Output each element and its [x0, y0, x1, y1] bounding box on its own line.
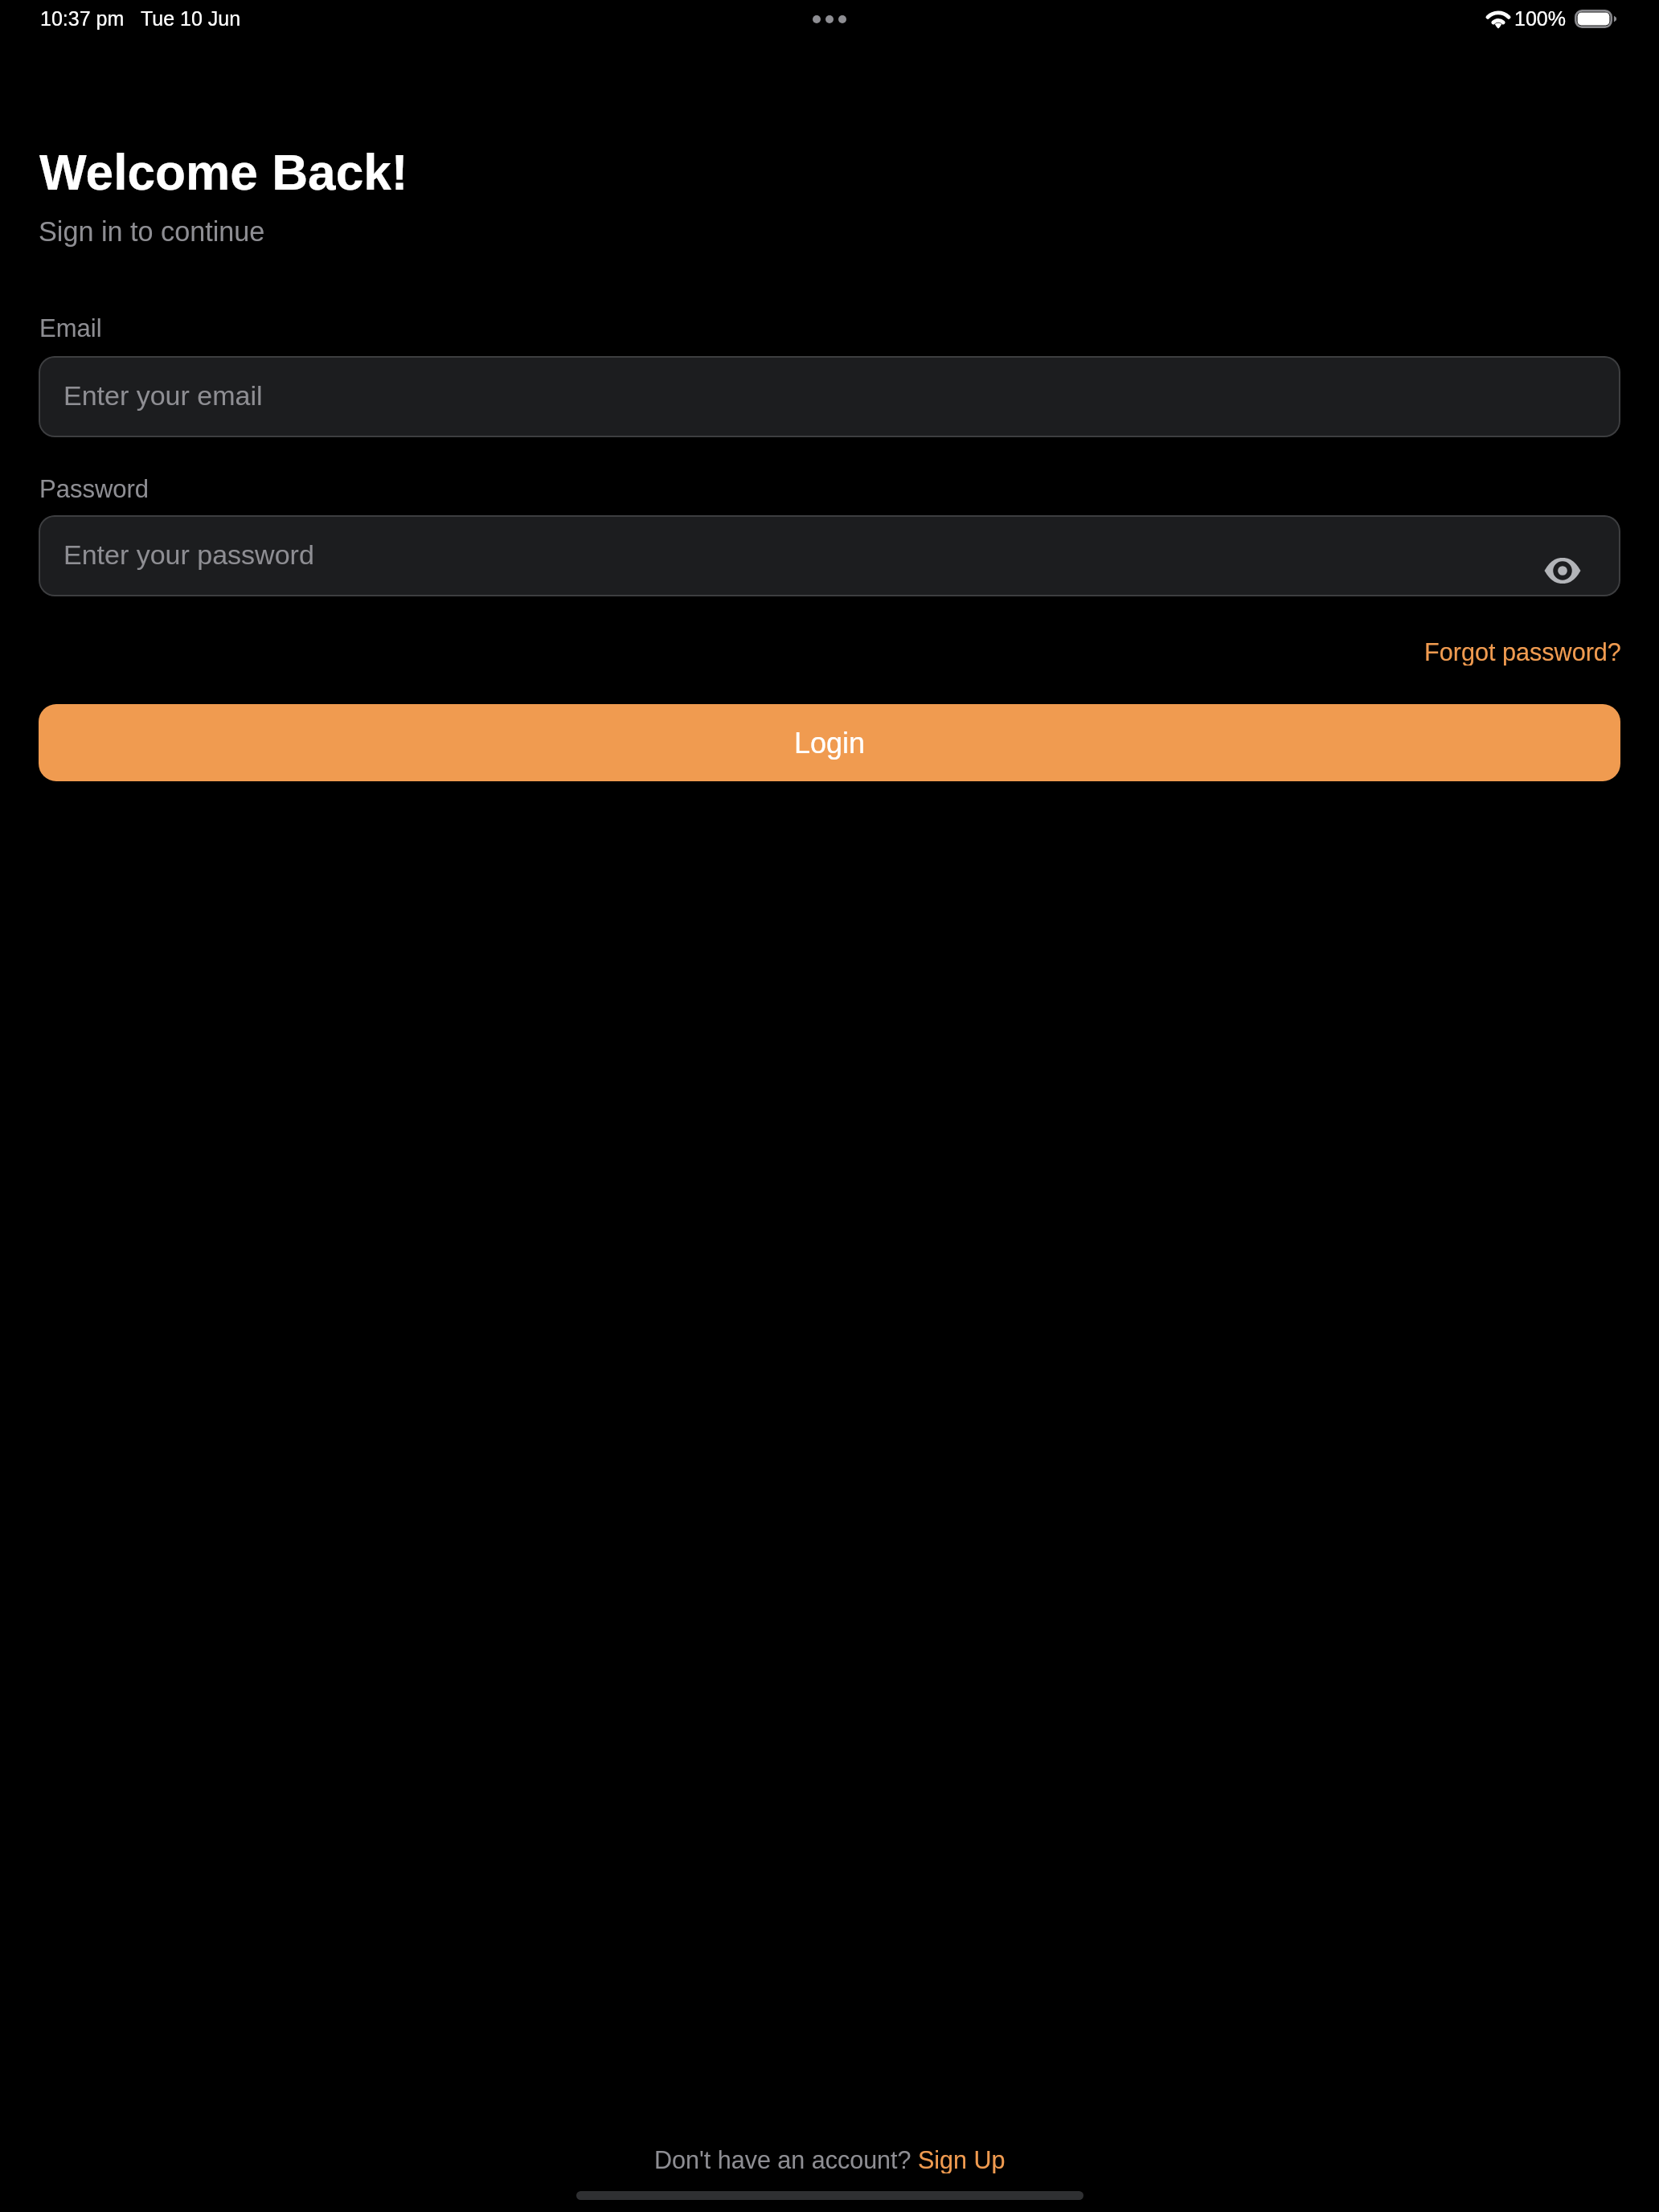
button[interactable]: Login [39, 704, 1620, 781]
staticText: Don't have an account? Sign Up [654, 2146, 1006, 2173]
staticText: Sign in to continue [39, 216, 265, 247]
staticText: 100% [1514, 7, 1566, 30]
staticText: Welcome Back! [39, 145, 408, 200]
staticText: Enter your password [63, 539, 314, 570]
staticText: Password [39, 475, 150, 503]
staticText: Login [794, 727, 866, 759]
staticText: Enter your email [63, 380, 263, 411]
staticText: Forgot password? [1424, 638, 1621, 666]
button[interactable]: Show password [1540, 548, 1585, 593]
button[interactable]: Enter your email [39, 356, 1620, 437]
staticText: Email [39, 314, 102, 342]
staticText: 10:37 pm [40, 7, 125, 30]
button[interactable]: Don't have an account? Sign Up [654, 2146, 1006, 2173]
button[interactable]: Forgot password? [1424, 638, 1621, 666]
staticText: Tue 10 Jun [141, 7, 241, 30]
button[interactable]: Enter your password [39, 515, 1620, 596]
